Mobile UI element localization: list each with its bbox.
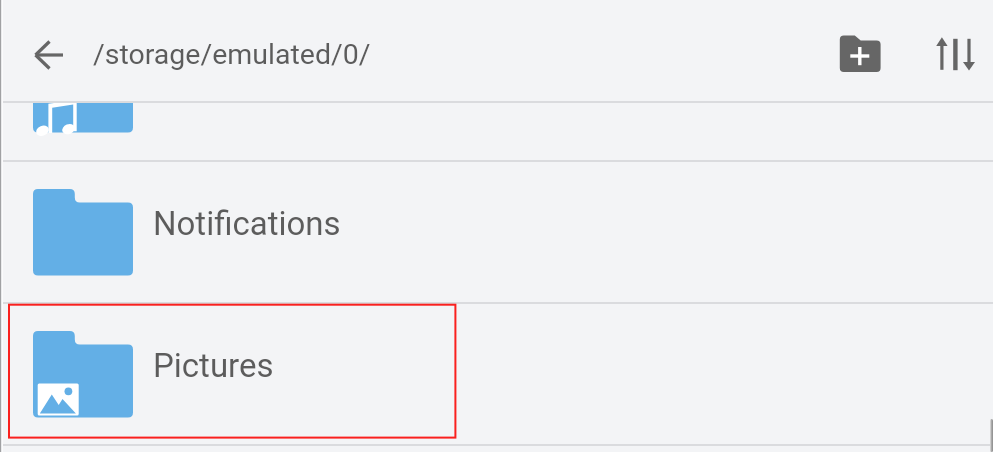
staticText: /storage/emulated/0/ [93,38,371,71]
button[interactable]: Pictures [0,304,993,445]
button[interactable] [0,103,993,161]
staticText: Pictures [153,346,274,385]
staticText: Notifications [153,204,341,243]
button[interactable]: Sort [921,22,981,82]
button[interactable]: Back [22,31,70,79]
button[interactable]: New folder [826,22,895,91]
button[interactable]: Notifications [0,162,993,303]
